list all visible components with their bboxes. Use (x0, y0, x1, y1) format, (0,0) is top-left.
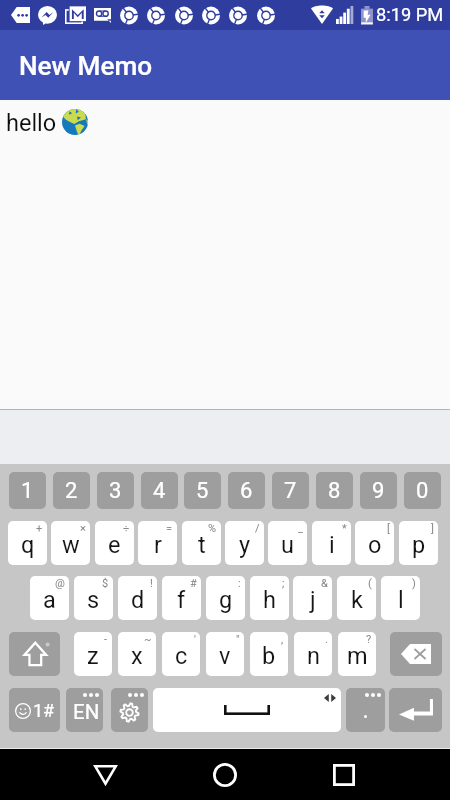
staticText: EN (73, 700, 100, 724)
button[interactable]: v (206, 632, 244, 676)
staticText: p (412, 531, 426, 559)
button[interactable]: n (294, 632, 332, 676)
button[interactable]: a (30, 576, 69, 620)
button[interactable]: g (206, 576, 245, 620)
button[interactable]: y (225, 521, 264, 565)
staticText: l (398, 586, 404, 614)
button[interactable]: 9 (360, 472, 397, 509)
button[interactable]: Period (346, 688, 385, 732)
staticText: c (175, 642, 188, 670)
button[interactable]: u (268, 521, 307, 565)
staticText: k (351, 586, 363, 614)
button[interactable]: Space (153, 688, 341, 732)
button[interactable]: 6 (228, 472, 265, 509)
staticText: ~ (144, 633, 152, 646)
button[interactable]: 2 (53, 472, 90, 509)
staticText: 4 (153, 478, 166, 504)
staticText: w (62, 531, 80, 559)
staticText: ) (412, 577, 416, 590)
staticText: j (310, 586, 316, 614)
staticText: 6 (240, 478, 253, 504)
button[interactable]: c (162, 632, 200, 676)
staticText: i (329, 531, 335, 559)
staticText: t (198, 531, 206, 559)
button[interactable]: Language (66, 688, 103, 732)
button[interactable]: 0 (404, 472, 441, 509)
staticText: 0 (416, 478, 429, 504)
button[interactable]: h (250, 576, 289, 620)
button[interactable]: Recent apps (314, 749, 373, 800)
button[interactable]: w (51, 521, 90, 565)
button[interactable]: j (293, 576, 332, 620)
staticText: " (236, 633, 240, 646)
button[interactable]: 7 (272, 472, 309, 509)
staticText: ' (194, 633, 196, 646)
staticText: # (190, 577, 197, 590)
button[interactable]: Backspace (390, 632, 442, 676)
staticText: v (219, 642, 231, 670)
button[interactable]: x (118, 632, 156, 676)
button[interactable]: 8 (316, 472, 353, 509)
button[interactable]: Memo text (0, 100, 450, 409)
button[interactable]: 1 (9, 472, 46, 509)
staticText: $ (102, 577, 109, 590)
button[interactable]: o (355, 521, 394, 565)
button[interactable]: l (381, 576, 420, 620)
staticText: g (219, 586, 233, 614)
button[interactable]: Back (76, 749, 135, 800)
staticText: y (239, 531, 251, 559)
staticText: ÷ (123, 522, 130, 535)
button[interactable]: m (338, 632, 376, 676)
staticText: - (104, 633, 108, 646)
button[interactable]: e (95, 521, 134, 565)
staticText: r (154, 531, 162, 559)
staticText: 1 (21, 478, 34, 504)
button[interactable]: s (74, 576, 113, 620)
staticText: 5 (196, 478, 209, 504)
staticText: @ (55, 577, 65, 590)
button[interactable]: q (8, 521, 47, 565)
staticText: & (321, 577, 328, 590)
staticText: 2 (65, 478, 78, 504)
staticText: s (87, 586, 100, 614)
staticText: e (108, 531, 121, 559)
staticText: , (281, 633, 284, 646)
button[interactable]: Home (195, 749, 254, 800)
staticText: × (80, 522, 86, 535)
button[interactable]: 5 (184, 472, 221, 509)
staticText: n (307, 642, 320, 670)
button[interactable]: i (312, 521, 351, 565)
button[interactable]: Settings (111, 688, 148, 732)
button[interactable]: 3 (97, 472, 134, 509)
button[interactable]: b (250, 632, 288, 676)
button[interactable]: t (182, 521, 221, 565)
staticText: h (263, 586, 276, 614)
button[interactable]: d (118, 576, 157, 620)
staticText: ( (368, 577, 372, 590)
staticText: hello (6, 109, 63, 137)
staticText: 3 (109, 478, 122, 504)
button[interactable]: Shift (9, 632, 60, 676)
staticText: ] (431, 522, 434, 535)
staticText: q (21, 531, 35, 559)
button[interactable]: Symbols (9, 688, 60, 732)
staticText: + (36, 522, 43, 535)
staticText: 8 (328, 478, 341, 504)
button[interactable]: 4 (141, 472, 178, 509)
staticText: : (238, 577, 241, 590)
staticText: 7 (284, 478, 297, 504)
button[interactable]: r (138, 521, 177, 565)
staticText: ! (150, 577, 153, 590)
button[interactable]: f (162, 576, 201, 620)
staticText: 9 (372, 478, 385, 504)
button[interactable]: z (74, 632, 112, 676)
button[interactable]: Enter (389, 688, 442, 732)
button[interactable]: k (337, 576, 376, 620)
staticText: z (87, 642, 99, 670)
staticText: f (177, 586, 186, 614)
staticText: / (255, 522, 260, 535)
staticText: ; (282, 577, 285, 590)
staticText: ? (366, 633, 372, 646)
button[interactable]: p (399, 521, 438, 565)
staticText: o (368, 531, 382, 559)
